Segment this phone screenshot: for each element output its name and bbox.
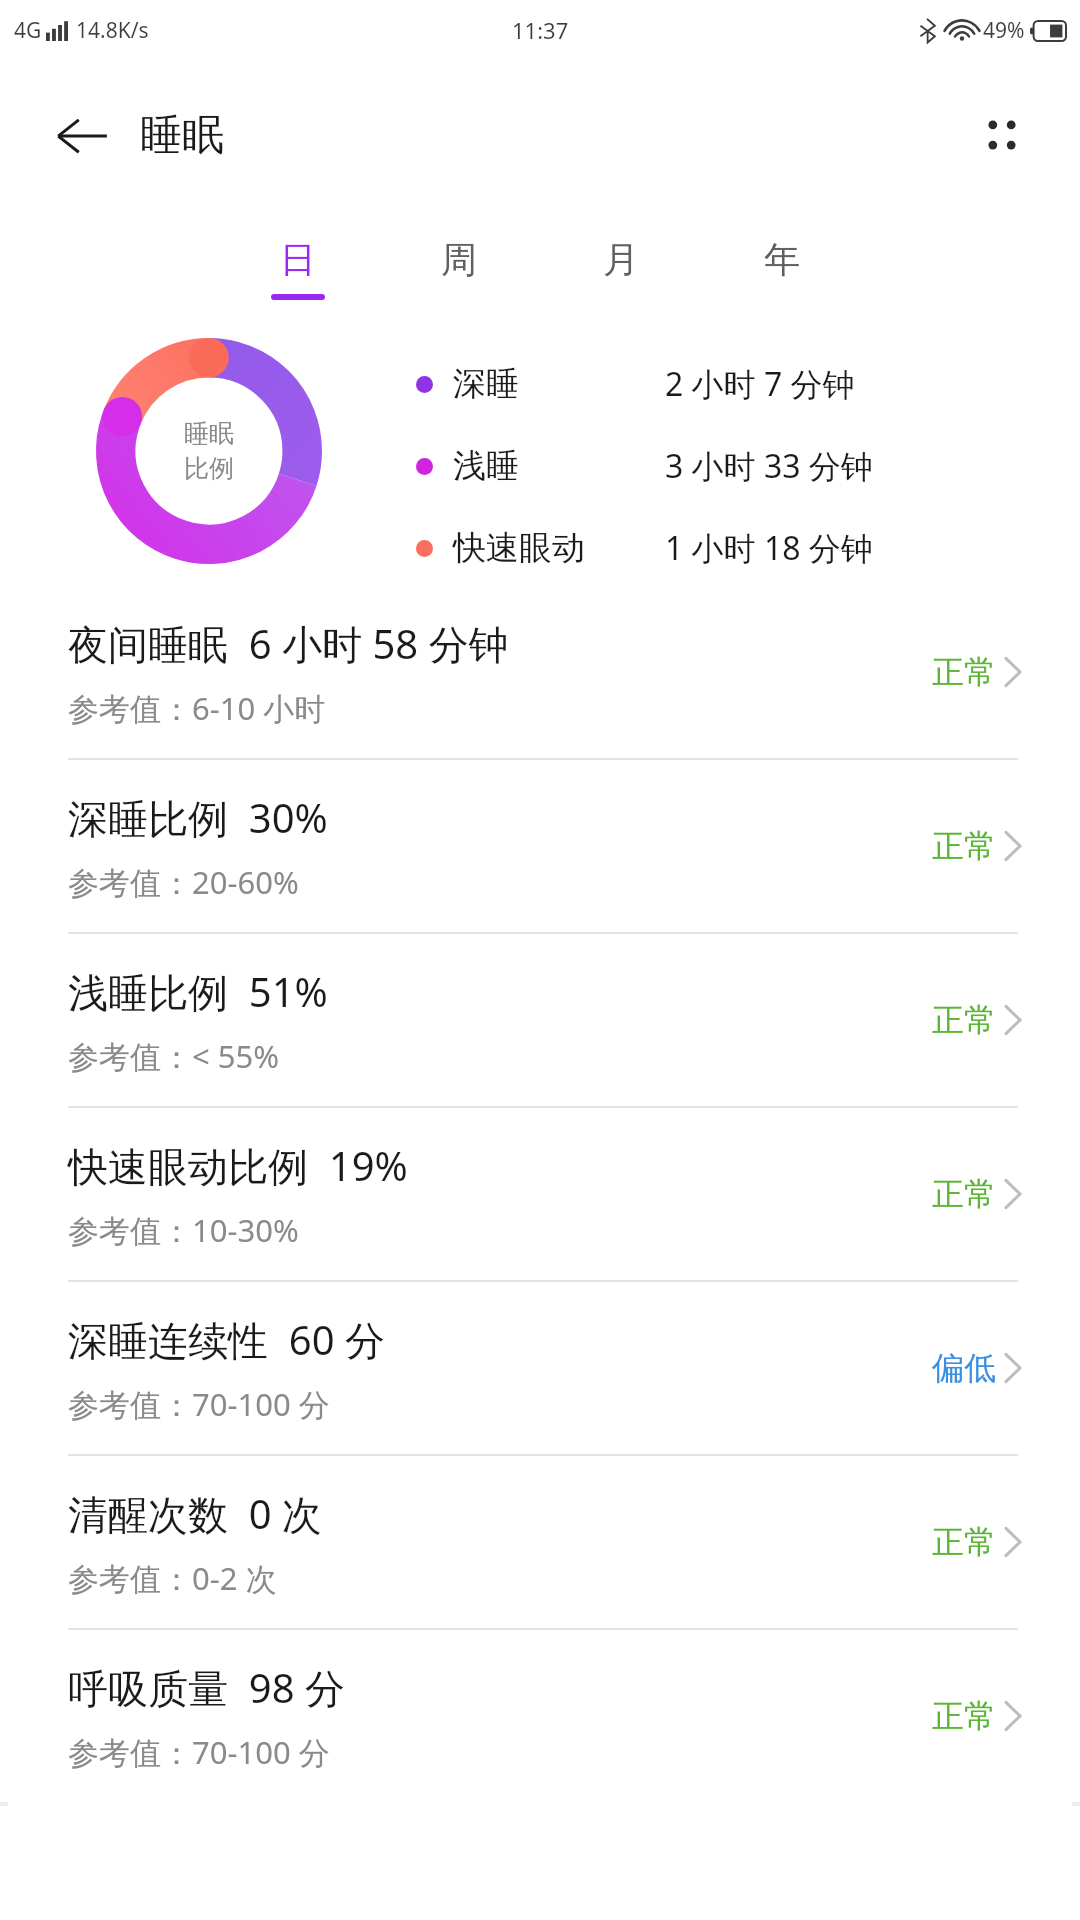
button[interactable]: 夜间睡眠 6 小时 58 分钟 [0,586,1080,758]
staticText: 2 小时 7 分钟 [665,362,855,406]
staticText: 参考值：10-30% [68,1209,299,1251]
staticText: 周 [441,237,477,282]
staticText: 正常 [932,1696,996,1736]
staticText: 参考值：0-2 次 [68,1557,277,1599]
button[interactable]: 周 [421,237,497,300]
button[interactable]: 深睡连续性 60 分 [0,1282,1080,1454]
button[interactable]: 深睡比例 30% [0,760,1080,932]
staticText: 快速眼动比例 19% [68,1138,408,1193]
staticText: 睡眠 [140,109,224,162]
staticText: 1 小时 18 分钟 [665,526,873,570]
staticText: 浅睡 [453,445,519,487]
staticText: 偏低 [932,1348,996,1388]
staticText: 月 [603,237,639,282]
button[interactable]: Back [46,99,118,171]
button[interactable]: 浅睡比例 51% [0,934,1080,1106]
staticText: 深睡连续性 60 分 [68,1312,385,1367]
staticText: 正常 [932,826,996,866]
staticText: 参考值：20-60% [68,861,299,903]
staticText: 正常 [932,1174,996,1214]
staticText: 49% [983,16,1025,45]
staticText: 快速眼动 [453,527,585,569]
staticText: 夜间睡眠 6 小时 58 分钟 [68,616,509,671]
staticText: 参考值：70-100 分 [68,1731,330,1773]
staticText: 正常 [932,1522,996,1562]
button[interactable]: 月 [583,237,659,300]
button[interactable]: More options [966,99,1038,171]
staticText: 参考值：70-100 分 [68,1383,330,1425]
staticText: 呼吸质量 98 分 [68,1660,345,1715]
staticText: 参考值：6-10 小时 [68,687,326,729]
staticText: 11:37 [512,15,569,45]
staticText: 参考值：< 55% [68,1035,280,1077]
button[interactable]: 年 [744,237,820,300]
button[interactable]: 快速眼动比例 19% [0,1108,1080,1280]
staticText: 14.8K/s [76,16,149,45]
staticText: 比例 [184,453,234,484]
button[interactable]: 呼吸质量 98 分 [0,1630,1080,1802]
button[interactable]: 日 [260,237,336,300]
staticText: 清醒次数 0 次 [68,1486,323,1541]
staticText: 深睡 [453,363,519,405]
staticText: 正常 [932,1000,996,1040]
staticText: 3 小时 33 分钟 [665,444,873,488]
staticText: 深睡比例 30% [68,790,328,845]
staticText: 正常 [932,652,996,692]
button[interactable]: 清醒次数 0 次 [0,1456,1080,1628]
staticText: 睡眠 [184,418,234,449]
staticText: 日 [280,237,316,282]
staticText: 年 [764,237,800,282]
staticText: 浅睡比例 51% [68,964,328,1019]
staticText: 4G [14,16,42,45]
